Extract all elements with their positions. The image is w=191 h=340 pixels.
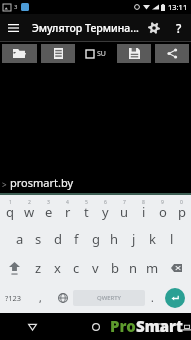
button[interactable]: . <box>145 283 159 313</box>
staticText: t <box>84 203 89 221</box>
staticText: l <box>170 230 174 248</box>
staticText: n <box>129 259 138 277</box>
button[interactable]: l <box>162 224 181 253</box>
staticText: , <box>39 291 42 305</box>
staticText: q <box>6 203 14 221</box>
staticText: 3 <box>47 199 50 206</box>
button[interactable]: a <box>10 224 29 253</box>
staticText: SU <box>97 49 106 59</box>
button[interactable]: j <box>124 224 143 253</box>
staticText: c <box>73 259 80 277</box>
button[interactable]: 6 <box>96 195 115 224</box>
button[interactable]: Shift <box>0 253 29 283</box>
staticText: z <box>35 259 42 277</box>
button[interactable]: Home <box>83 314 109 340</box>
button[interactable]: 2 <box>20 195 39 224</box>
staticText: 5 <box>85 199 88 206</box>
button[interactable]: c <box>67 253 86 283</box>
staticText: QWERTY <box>97 294 122 302</box>
button[interactable]: 9 <box>153 195 172 224</box>
staticText: o <box>159 203 167 221</box>
button[interactable]: m <box>143 253 162 283</box>
button[interactable]: n <box>124 253 143 283</box>
staticText: m <box>146 259 159 277</box>
button[interactable]: Help <box>167 14 191 41</box>
staticText: u <box>120 203 129 221</box>
button[interactable]: x <box>48 253 67 283</box>
staticText: > <box>2 179 7 190</box>
button[interactable]: 0 <box>172 195 191 224</box>
staticText: 9 <box>161 199 164 206</box>
staticText: d <box>54 230 62 248</box>
button[interactable]: Log <box>41 44 75 63</box>
button[interactable]: 8 <box>134 195 153 224</box>
button[interactable]: 1 <box>0 195 20 224</box>
button[interactable]: s <box>29 224 48 253</box>
button[interactable]: , <box>27 283 53 313</box>
staticText: 6 <box>104 199 107 206</box>
staticText: s <box>35 230 42 248</box>
staticText: x <box>54 259 61 277</box>
staticText: y <box>102 203 109 221</box>
button[interactable]: 3 <box>39 195 58 224</box>
staticText: p <box>178 203 186 221</box>
staticText: Smart <box>136 316 183 336</box>
button[interactable]: Share <box>155 44 189 63</box>
button[interactable]: Navigation menu <box>0 14 27 41</box>
staticText: i <box>142 203 146 221</box>
staticText: 1 <box>9 199 12 206</box>
staticText: e <box>45 203 53 221</box>
button[interactable]: d <box>48 224 67 253</box>
button[interactable]: Recent apps <box>146 314 172 340</box>
button[interactable]: f <box>67 224 86 253</box>
staticText: 4 <box>66 199 69 206</box>
staticText: 8 <box>142 199 145 206</box>
button[interactable]: Enter <box>159 283 191 313</box>
button[interactable]: h <box>105 224 124 253</box>
button[interactable]: z <box>29 253 48 283</box>
button[interactable]: Change language <box>53 283 73 313</box>
staticText: h <box>110 230 119 248</box>
staticText: . <box>151 291 154 305</box>
staticText: a <box>16 230 24 248</box>
staticText: j <box>132 230 136 248</box>
staticText: 3 <box>14 3 18 11</box>
staticText: ? <box>176 20 182 36</box>
button[interactable]: b <box>105 253 124 283</box>
staticText: Эмулятор Термина... <box>32 21 139 35</box>
button[interactable]: Symbols <box>0 283 27 313</box>
staticText: k <box>149 230 156 248</box>
staticText: w <box>24 203 35 221</box>
staticText: 7 <box>123 199 126 206</box>
staticText: b <box>111 259 119 277</box>
staticText: 13:11 <box>168 2 188 12</box>
button[interactable]: Settings <box>141 14 167 41</box>
staticText: v <box>92 259 99 277</box>
button[interactable]: 7 <box>115 195 134 224</box>
button[interactable]: SU <box>77 44 115 63</box>
button[interactable]: Open file <box>2 44 37 63</box>
button[interactable]: 5 <box>77 195 96 224</box>
staticText: g <box>92 230 100 248</box>
staticText: 2 <box>28 199 31 206</box>
button[interactable]: k <box>143 224 162 253</box>
button[interactable]: Backspace <box>162 253 191 283</box>
button[interactable]: 4 <box>58 195 77 224</box>
staticText: Pro <box>110 316 136 336</box>
button[interactable]: Back <box>19 314 45 340</box>
button[interactable]: Space <box>73 290 145 306</box>
staticText: prosmart.by <box>10 175 74 190</box>
staticText: 0 <box>180 199 183 206</box>
button[interactable]: g <box>86 224 105 253</box>
staticText: f <box>74 230 79 248</box>
button[interactable]: v <box>86 253 105 283</box>
button[interactable]: Save <box>117 44 151 63</box>
staticText: r <box>65 203 71 221</box>
staticText: ?123 <box>5 293 22 303</box>
